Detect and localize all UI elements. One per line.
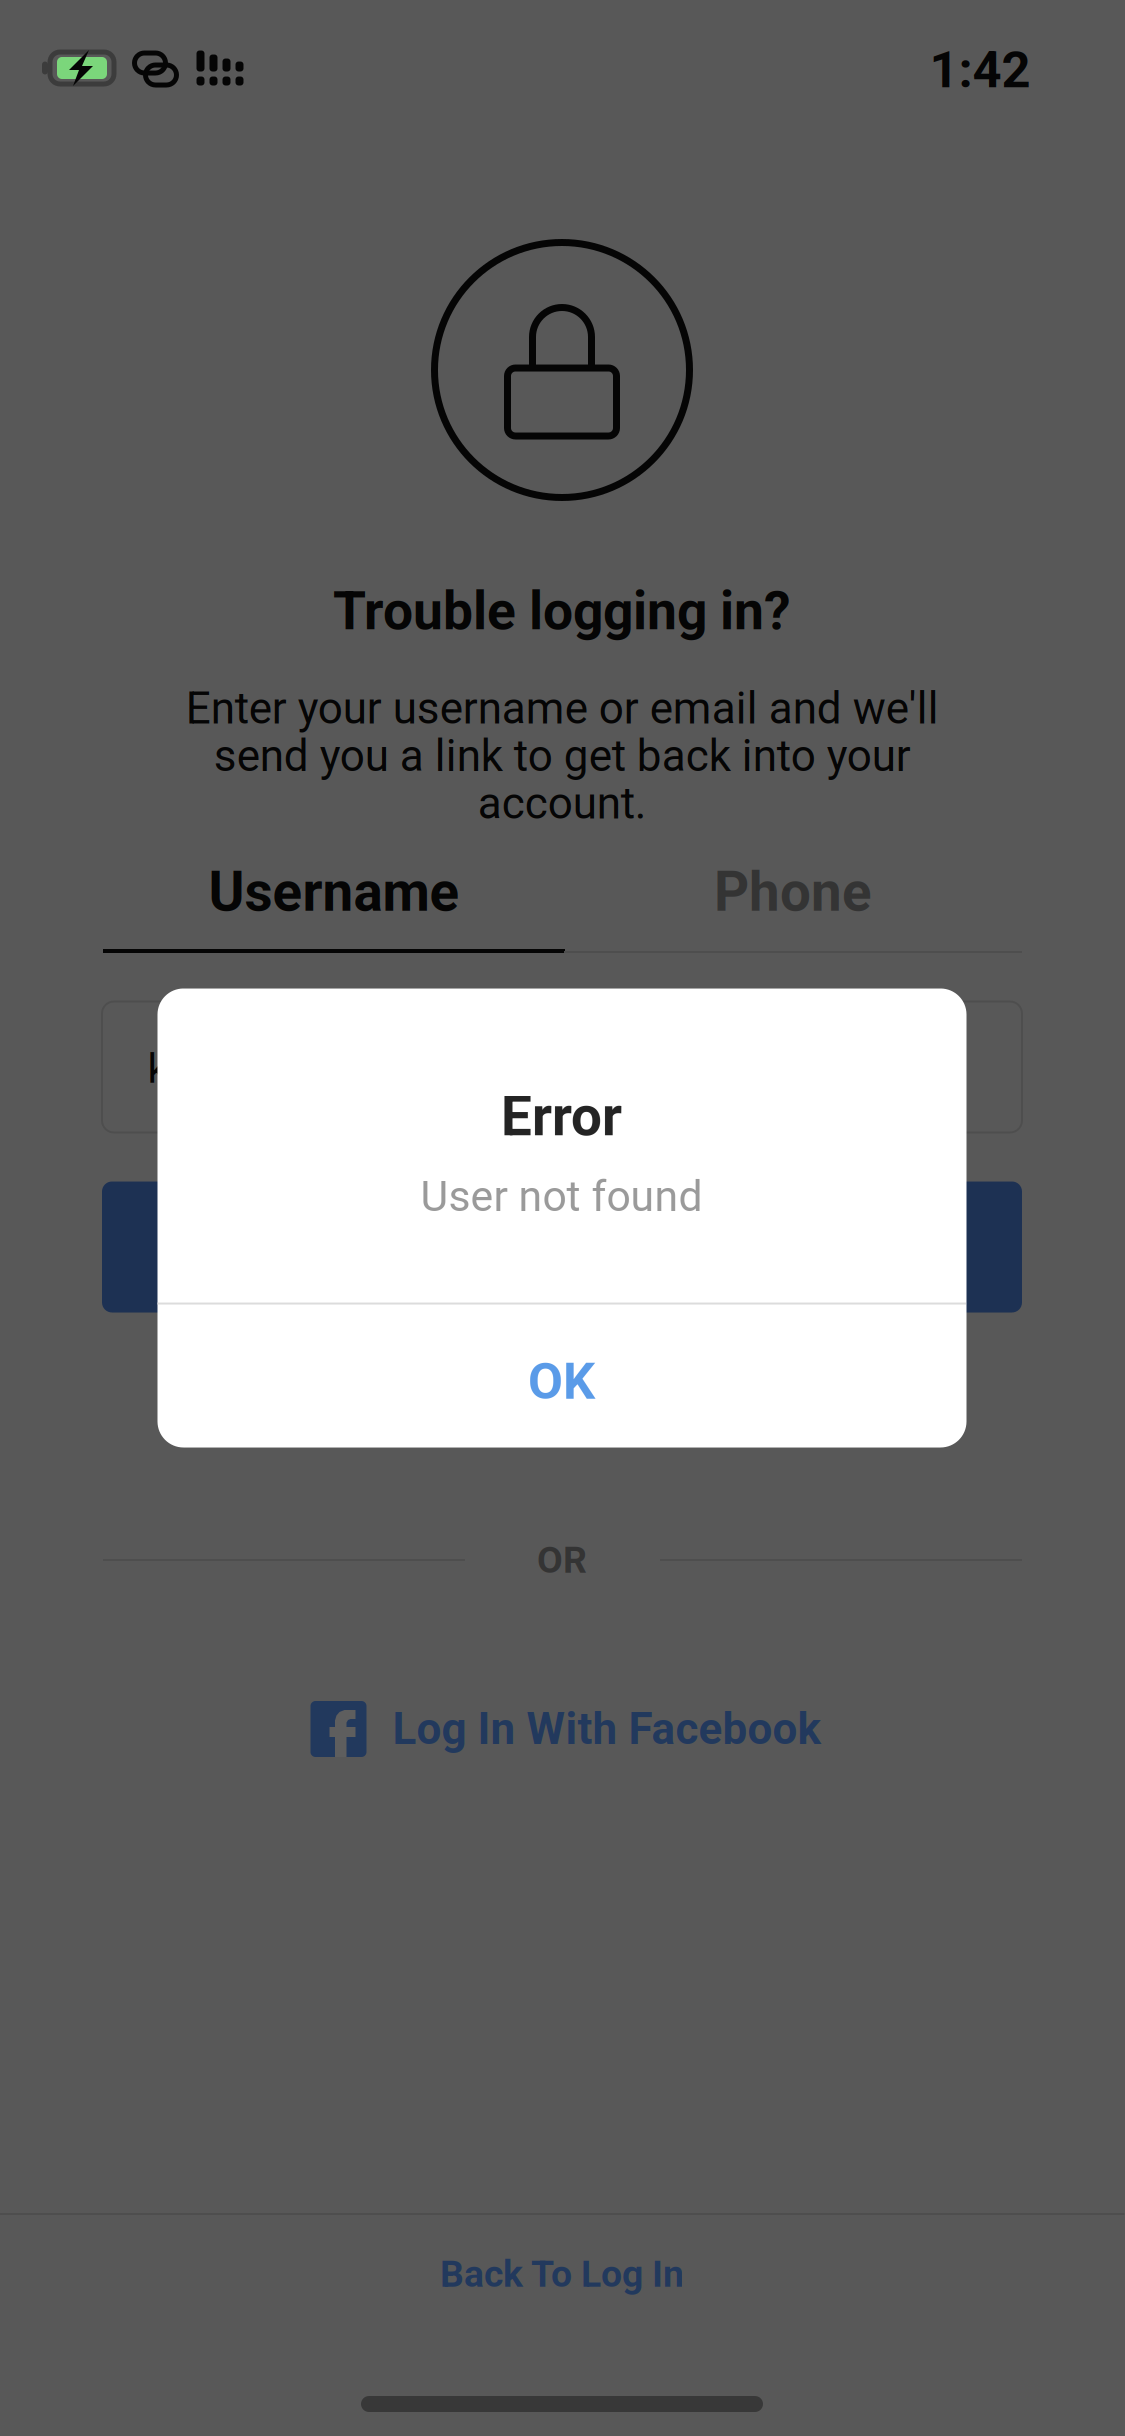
button[interactable]: Username (103, 848, 565, 948)
staticText: Enter your username or email and we'll s… (185, 683, 938, 829)
button[interactable]: Send Login Link (102, 1181, 1022, 1312)
staticText: Error (501, 1084, 622, 1149)
staticText: OK (528, 1352, 595, 1411)
button[interactable]: Back To Log In (0, 2219, 1124, 2329)
button[interactable]: Log In With Facebook (306, 1689, 826, 1769)
staticText: Username (208, 860, 459, 924)
button[interactable]: Phone (564, 848, 1022, 948)
staticText: k (147, 1044, 168, 1093)
staticText: Back To Log In (440, 2252, 684, 2296)
staticText: Log In With Facebook (392, 1703, 821, 1755)
staticText: 1:42 (929, 40, 1030, 100)
staticText: Trouble logging in? (333, 580, 791, 642)
staticText: User not found (420, 1171, 702, 1221)
staticText: OR (537, 1538, 587, 1582)
button[interactable]: OK (157, 1310, 966, 1453)
staticText: Phone (714, 860, 872, 924)
